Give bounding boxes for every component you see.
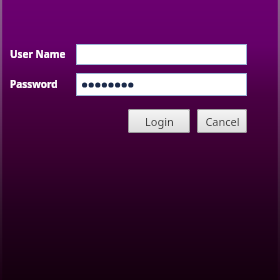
staticText: Login (145, 114, 174, 129)
staticText: Password (10, 77, 58, 91)
button[interactable]: Login (128, 109, 190, 133)
staticText: User Name (10, 47, 66, 61)
button[interactable]: Cancel (197, 109, 247, 133)
button[interactable] (76, 73, 247, 96)
button[interactable] (76, 44, 247, 65)
staticText: Cancel (205, 114, 240, 129)
